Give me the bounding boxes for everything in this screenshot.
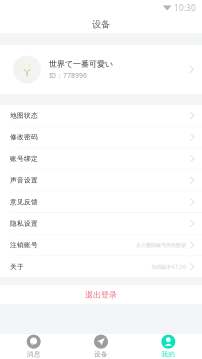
button[interactable]: 注销账号 — [0, 235, 202, 256]
staticText: 设备 — [92, 19, 110, 30]
staticText: 消息 — [27, 350, 41, 358]
button[interactable]: 我的 — [135, 334, 202, 359]
staticText: 声音设置 — [10, 176, 38, 184]
staticText: ID：778996 — [49, 71, 87, 80]
staticText: 退出登录 — [85, 290, 117, 300]
staticText: 账号绑定 — [10, 155, 38, 163]
staticText: 世界て一番可愛い — [49, 59, 113, 69]
button[interactable]: 隐私设置 — [0, 213, 202, 235]
staticText: 修改密码 — [10, 133, 38, 141]
button[interactable]: 修改密码 — [0, 127, 202, 148]
button[interactable]: 世界て一番可愛い — [0, 45, 202, 94]
staticText: 隐私设置 — [10, 219, 38, 228]
staticText: 关于 — [10, 263, 24, 271]
staticText: 永久删除账号所有数据 — [136, 242, 186, 248]
button[interactable]: 关于 — [0, 256, 202, 277]
staticText: 意见反馈 — [10, 198, 38, 206]
staticText: 地图状态 — [10, 111, 38, 120]
button[interactable]: 意见反馈 — [0, 191, 202, 213]
button[interactable]: 退出登录 — [0, 285, 202, 304]
button[interactable]: 账号绑定 — [0, 148, 202, 170]
staticText: 我的 — [161, 350, 175, 358]
staticText: 10:30 — [174, 3, 196, 13]
staticText: 设备 — [94, 350, 108, 358]
button[interactable]: 设备 — [67, 334, 135, 359]
button[interactable]: 地图状态 — [0, 105, 202, 127]
button[interactable]: 消息 — [0, 334, 67, 359]
staticText: 注销账号 — [10, 241, 38, 249]
button[interactable]: 声音设置 — [0, 170, 202, 191]
staticText: 当前版本4.7.3.0 — [151, 263, 186, 270]
